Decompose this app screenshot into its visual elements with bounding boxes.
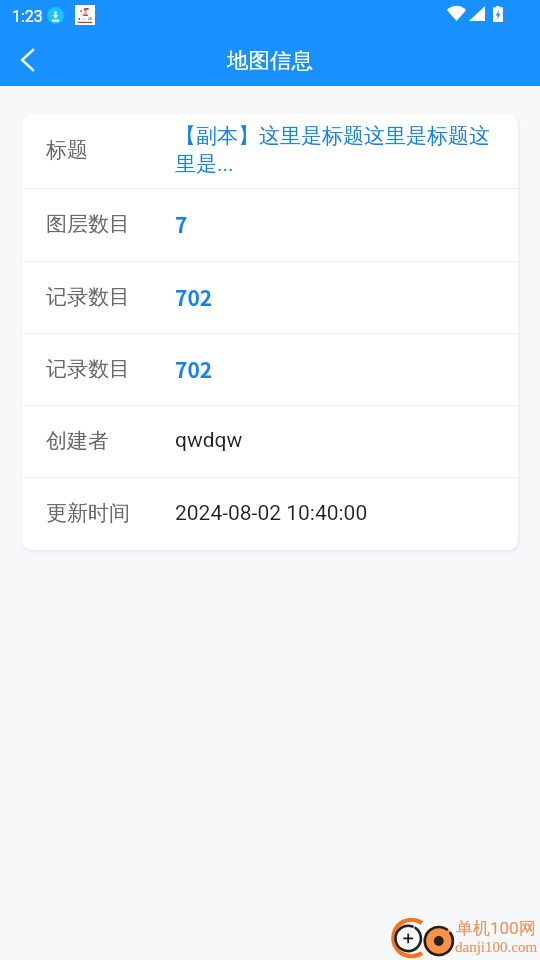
- button[interactable]: 标题: [22, 114, 518, 188]
- button[interactable]: 创建者: [22, 406, 518, 477]
- staticText: 1:23: [12, 7, 43, 26]
- staticText: 702: [175, 354, 213, 384]
- staticText: 标题: [46, 137, 175, 163]
- staticText: 2024-08-02 10:40:00: [175, 501, 368, 526]
- staticText: qwdqw: [175, 428, 243, 453]
- staticText: 更新时间: [46, 500, 175, 526]
- staticText: 地图信息: [227, 47, 313, 74]
- staticText: 记录数目: [46, 356, 175, 382]
- staticText: 702: [175, 282, 213, 312]
- staticText: 7: [175, 209, 188, 239]
- button[interactable]: 记录数目: [22, 334, 518, 405]
- staticText: 图层数目: [46, 211, 175, 237]
- staticText: 记录数目: [46, 284, 175, 310]
- button[interactable]: Back: [0, 36, 52, 86]
- button[interactable]: 记录数目: [22, 262, 518, 333]
- staticText: 单机100网: [456, 918, 536, 939]
- staticText: 创建者: [46, 428, 175, 454]
- other: Download: [47, 7, 64, 24]
- staticText: danji100.com: [455, 939, 538, 956]
- staticText: 【副本】这里是标题这里是标题这里是...: [175, 123, 496, 177]
- button[interactable]: 图层数目: [22, 189, 518, 261]
- button[interactable]: 更新时间: [22, 478, 518, 550]
